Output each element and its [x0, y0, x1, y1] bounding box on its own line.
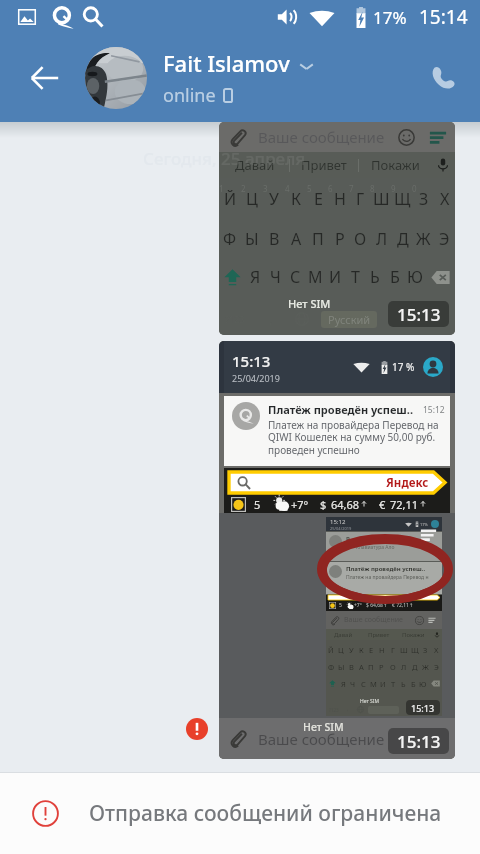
staticText: Ы — [338, 662, 345, 671]
button[interactable]: Photo message — [219, 341, 455, 759]
staticText: $ 64,68↑ — [366, 602, 388, 609]
staticText: 15:13 — [397, 730, 441, 753]
staticText: Я — [341, 679, 346, 688]
staticText: +7° — [291, 497, 309, 512]
staticText: € — [379, 497, 386, 512]
staticText: К — [291, 188, 302, 210]
staticText: 25/04/2019 — [232, 372, 280, 384]
staticText: В — [269, 228, 280, 250]
staticText: Ю — [419, 679, 427, 688]
staticText: 9 — [391, 183, 396, 194]
staticText: 4 — [285, 183, 290, 194]
staticText: Ч — [350, 679, 356, 688]
staticText: Ф — [328, 662, 335, 671]
staticText: Нет SIM — [360, 698, 380, 705]
staticText: Р — [335, 228, 345, 250]
staticText: 3 — [263, 183, 268, 194]
staticText: Б — [390, 266, 400, 288]
staticText: А — [291, 228, 302, 250]
button[interactable]: Fait Islamov — [163, 47, 413, 109]
staticText: Х — [434, 645, 439, 654]
staticText: Ч — [270, 266, 281, 288]
staticText: 5 — [339, 602, 342, 609]
staticText: 15:14 — [419, 4, 468, 30]
staticText: 17 % — [392, 360, 415, 374]
staticText: И — [329, 266, 342, 288]
staticText: Давай — [334, 631, 353, 639]
staticText: У — [349, 645, 354, 654]
staticText: 6 — [328, 183, 333, 194]
staticText: € 72,11↑ — [392, 602, 414, 609]
staticText: Ваше сообщение — [258, 127, 385, 147]
staticText: Платеж на провайдера Перевод н — [346, 574, 429, 581]
staticText: Отправка сообщений ограничена — [89, 799, 442, 828]
staticText: Н — [334, 188, 346, 210]
staticText: Ю — [407, 266, 423, 288]
staticText: Е — [369, 645, 374, 654]
staticText: С — [290, 266, 301, 288]
staticText: 15:13 — [411, 702, 435, 714]
staticText: 15:13 — [397, 303, 441, 326]
staticText: Ц — [246, 188, 258, 210]
staticText: Р — [379, 662, 384, 671]
staticText: Нет SIM — [303, 720, 344, 734]
staticText: Ж — [422, 662, 429, 671]
staticText: Н — [379, 645, 385, 654]
button[interactable]: Отправка сообщений ограничена — [0, 773, 480, 854]
button[interactable]: Call — [412, 34, 474, 122]
staticText: Т — [351, 266, 360, 288]
staticText: 7 — [349, 183, 354, 194]
staticText: Ц — [338, 645, 344, 654]
staticText: Покажи — [371, 156, 420, 174]
staticText: 15:13 — [232, 351, 271, 371]
staticText: 25/04/2019 — [330, 526, 352, 531]
staticText: Привет — [368, 631, 390, 639]
staticText: В... — [346, 535, 356, 543]
staticText: 17% — [420, 522, 428, 527]
staticText: Русский — [328, 312, 371, 327]
staticText: Ш — [400, 645, 408, 654]
staticText: З — [423, 645, 428, 654]
staticText: О — [390, 662, 396, 671]
staticText: Ваше сообщение — [258, 729, 385, 749]
staticText: Д — [412, 662, 418, 671]
staticText: 17% — [373, 6, 407, 29]
staticText: Я — [250, 266, 261, 288]
staticText: Г — [391, 645, 395, 654]
button[interactable]: Profile photo — [85, 47, 147, 109]
staticText: ва - Клавиатура Ало — [346, 544, 395, 551]
staticText: 15:12 — [423, 404, 445, 416]
staticText: Щ — [411, 645, 419, 654]
staticText: П — [312, 228, 324, 250]
staticText: Ж — [416, 228, 431, 250]
staticText: В — [349, 662, 354, 671]
staticText: У — [269, 188, 279, 210]
staticText: О — [354, 228, 367, 250]
staticText: 0 — [412, 183, 417, 194]
staticText: Э — [434, 662, 439, 671]
staticText: 1 — [219, 183, 224, 194]
staticText: 5 — [254, 497, 261, 512]
staticText: Платёж проведён успеш.. — [268, 402, 414, 417]
staticText: Д — [397, 228, 409, 250]
staticText: Х — [440, 188, 450, 210]
staticText: Яндекс — [386, 475, 429, 491]
staticText: С — [361, 679, 366, 688]
staticText: М — [308, 266, 323, 288]
staticText: Ь — [401, 679, 406, 688]
button[interactable]: Photo message — [219, 122, 455, 335]
staticText: 72,11 — [390, 497, 419, 512]
staticText: Ь — [370, 266, 380, 288]
button[interactable]: Back — [14, 34, 76, 122]
staticText: А — [359, 662, 364, 671]
staticText: Давай — [235, 156, 275, 174]
staticText: Л — [401, 662, 407, 671]
staticText: Сегодня, 25 апреля — [143, 147, 306, 170]
staticText: 15:12 — [330, 518, 346, 526]
staticText: Э — [439, 228, 450, 250]
staticText: Привет — [301, 156, 347, 174]
staticText: Щ — [394, 188, 411, 210]
